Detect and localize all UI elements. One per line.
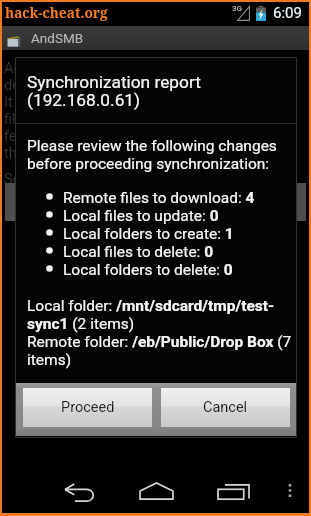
staticText: AndSMB xyxy=(31,30,84,46)
staticText: hack-cheat.org xyxy=(5,3,108,22)
staticText: features a synchronization mode xyxy=(4,128,215,145)
staticText: Local files to update: 0 xyxy=(63,207,219,225)
staticText: Local folder: /mnt/sdcard/tmp/test-sync1… xyxy=(27,297,299,369)
staticText: (192.168.0.61) xyxy=(27,90,141,110)
staticText: the network and the device folders xyxy=(4,145,226,162)
staticText: 3G xyxy=(232,4,242,13)
staticText: designed to access shared folders xyxy=(4,77,225,94)
staticText: Please review the following changes befo… xyxy=(27,137,277,173)
staticText: Remote files to download: 4 xyxy=(63,189,255,207)
button[interactable]: Recent apps xyxy=(211,470,255,514)
staticText: files from the network to the device xyxy=(4,111,231,128)
staticText: Local folders to delete: 0 xyxy=(63,261,233,279)
staticText: Synchronization report xyxy=(27,72,201,92)
staticText: Local files to delete: 0 xyxy=(63,243,214,261)
button[interactable]: Cancel xyxy=(161,388,290,427)
staticText: 6:09 xyxy=(273,4,302,22)
staticText: AndSMB is an SMB client for Android xyxy=(4,60,243,77)
staticText: Proceed xyxy=(61,399,115,416)
staticText: Settings xyxy=(4,171,57,188)
staticText: Cancel xyxy=(203,399,248,416)
button[interactable]: Home xyxy=(134,469,178,513)
button[interactable]: Proceed xyxy=(23,388,152,427)
button[interactable]: More options xyxy=(282,480,298,502)
staticText: It allows to browse, download and xyxy=(4,94,223,111)
button[interactable]: Back xyxy=(57,471,101,515)
staticText: Local folders to create: 1 xyxy=(63,225,234,243)
